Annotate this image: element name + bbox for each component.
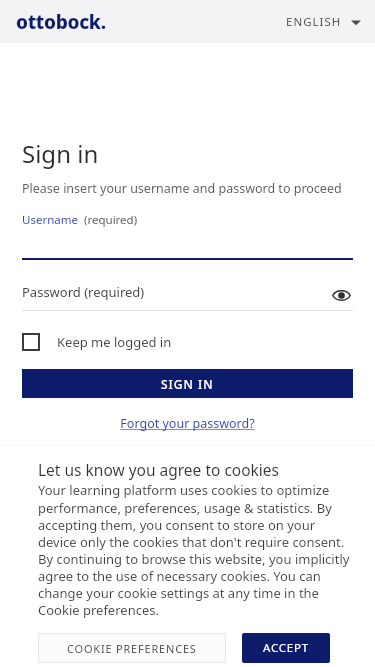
button[interactable]: ENGLISH <box>286 14 361 30</box>
staticText: Let us know you agree to cookies <box>38 459 280 480</box>
button[interactable]: Forgot your password? <box>120 415 255 432</box>
staticText: SIGN IN <box>161 376 214 392</box>
staticText: Username <box>22 212 78 228</box>
button[interactable]: ottobock. <box>16 9 106 35</box>
button[interactable] <box>22 228 353 260</box>
staticText: Sign in <box>22 137 99 170</box>
staticText: Keep me logged in <box>57 333 172 351</box>
staticText: (required) <box>84 212 138 228</box>
staticText: Password (required) <box>22 283 145 301</box>
staticText: ACCEPT <box>263 640 309 656</box>
staticText: Please insert your username and password… <box>22 180 342 197</box>
button[interactable]: Show password <box>329 283 353 307</box>
button[interactable]: COOKIE PREFERENCES <box>38 633 226 663</box>
button[interactable]: Password (required) <box>22 283 353 311</box>
button[interactable]: Keep me logged in <box>22 333 353 351</box>
staticText: COOKIE PREFERENCES <box>67 641 197 656</box>
button[interactable]: ACCEPT <box>242 633 330 663</box>
staticText: Your learning platform uses cookies to o… <box>38 481 357 619</box>
staticText: ENGLISH <box>286 14 342 30</box>
button[interactable]: SIGN IN <box>22 369 353 398</box>
